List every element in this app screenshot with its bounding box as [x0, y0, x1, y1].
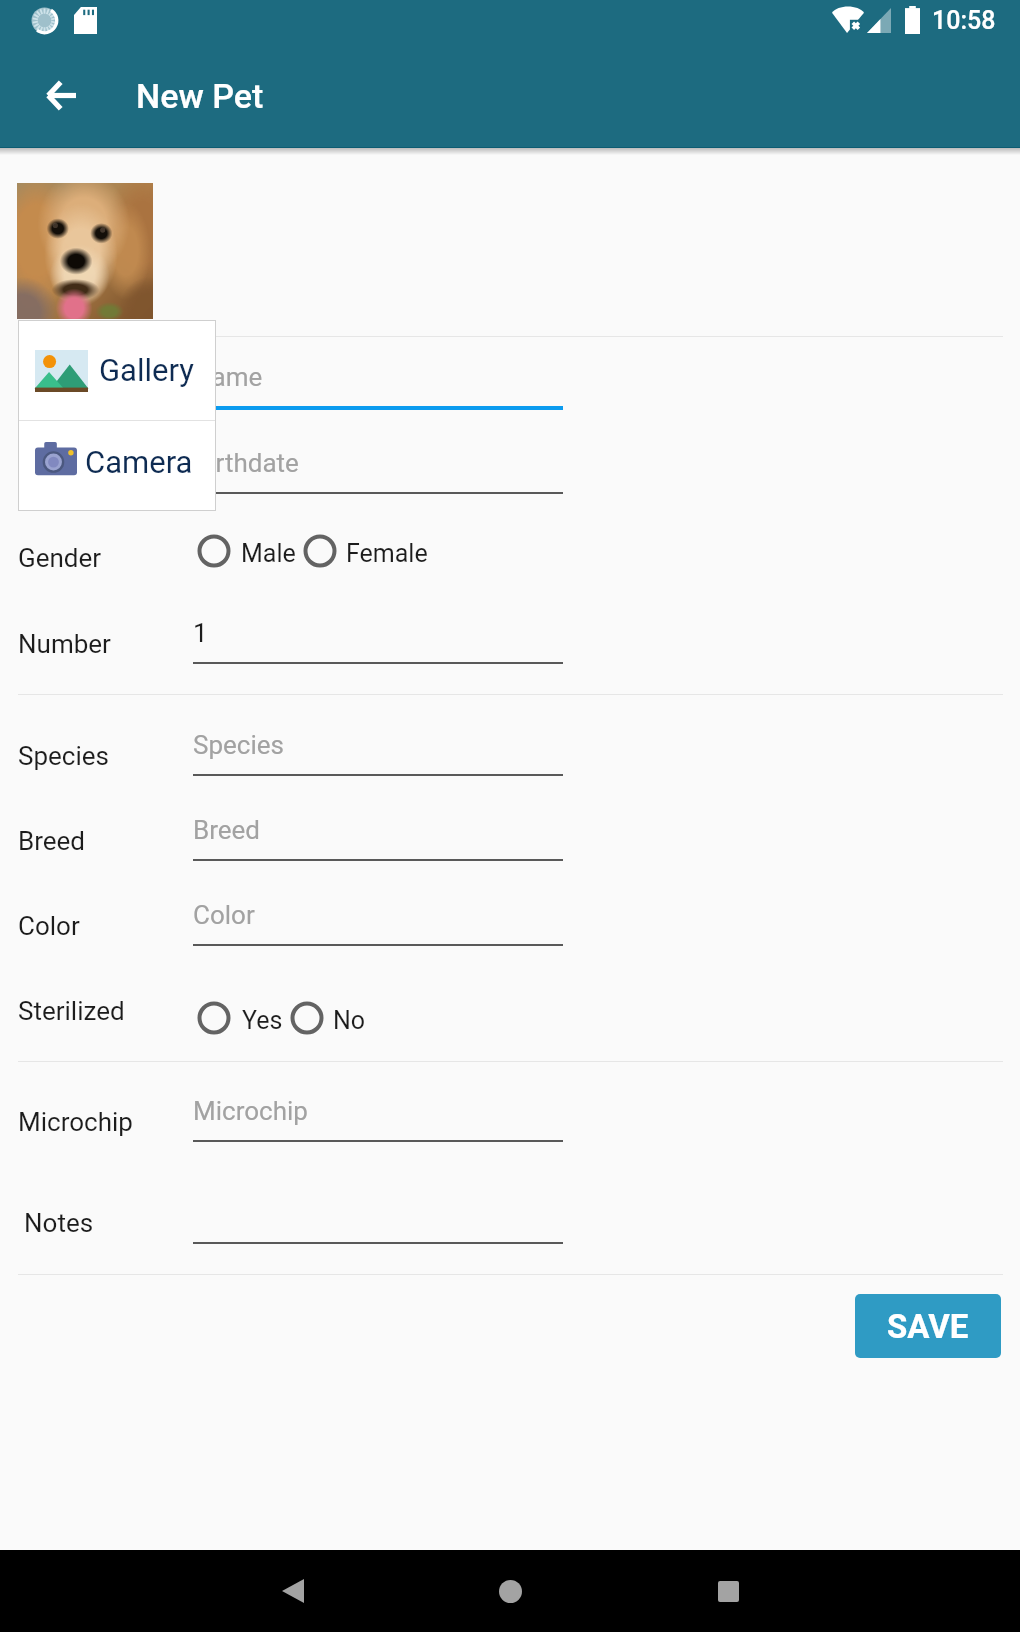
- staticText: 1: [193, 618, 208, 648]
- staticText: Gallery: [99, 352, 194, 388]
- staticText: 10:58: [932, 6, 996, 35]
- button[interactable]: Navigate up: [27, 61, 95, 129]
- button[interactable]: Birthdate: [193, 436, 563, 494]
- staticText: Birthdate: [18, 459, 124, 489]
- button[interactable]: Notes: [193, 1186, 563, 1244]
- staticText: Microchip: [193, 1096, 308, 1126]
- staticText: Male: [241, 539, 296, 568]
- button[interactable]: Breed: [193, 803, 563, 861]
- staticText: Female: [346, 539, 428, 568]
- staticText: Sterilized: [18, 996, 125, 1026]
- staticText: Color: [193, 900, 255, 930]
- staticText: Species: [18, 741, 109, 771]
- button[interactable]: Camera: [19, 421, 215, 510]
- staticText: Color: [18, 911, 80, 941]
- staticText: SAVE: [887, 1307, 969, 1346]
- staticText: Camera: [85, 444, 193, 480]
- staticText: No: [333, 1006, 366, 1035]
- staticText: Name: [193, 362, 263, 392]
- button[interactable]: Back: [261, 1559, 325, 1623]
- button[interactable]: Yes: [192, 994, 284, 1042]
- button[interactable]: Gallery: [19, 321, 215, 420]
- button[interactable]: Pet photo: [17, 183, 153, 319]
- button[interactable]: Home: [478, 1559, 542, 1623]
- staticText: Yes: [242, 1006, 283, 1035]
- staticText: Notes: [24, 1208, 94, 1238]
- button[interactable]: Species: [193, 718, 563, 776]
- staticText: Gender: [18, 543, 102, 573]
- staticText: New Pet: [136, 76, 264, 116]
- button[interactable]: Name: [193, 352, 563, 406]
- staticText: Microchip: [18, 1107, 133, 1137]
- staticText: Number: [18, 629, 111, 659]
- button[interactable]: SAVE: [855, 1294, 1001, 1358]
- staticText: Breed: [18, 826, 86, 856]
- button[interactable]: Color: [193, 888, 563, 946]
- button[interactable]: Microchip: [193, 1084, 563, 1142]
- button[interactable]: Recent apps: [696, 1559, 760, 1623]
- staticText: Birthdate: [193, 448, 299, 478]
- button[interactable]: Male: [192, 527, 296, 575]
- staticText: Breed: [193, 815, 261, 845]
- staticText: Species: [193, 730, 284, 760]
- button[interactable]: Number: [193, 606, 563, 664]
- button[interactable]: Female: [298, 527, 430, 575]
- button[interactable]: No: [285, 994, 369, 1042]
